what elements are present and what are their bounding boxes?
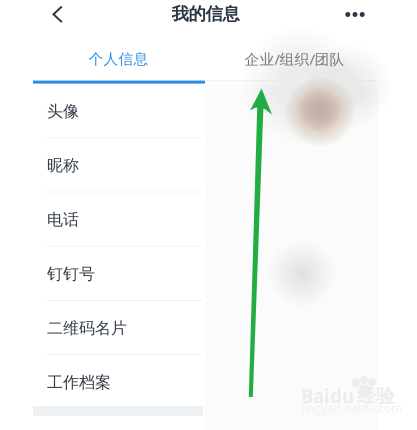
staticText: 昵称 (47, 156, 79, 175)
button[interactable]: More options (338, 0, 372, 32)
staticText: 我的信息 (171, 3, 239, 25)
staticText: jingyan.baidu.com (301, 400, 402, 416)
staticText: 二维码名片 (47, 318, 127, 338)
staticText: 电话 (47, 210, 79, 230)
button[interactable]: 个人信息 (32, 37, 205, 81)
staticText: 个人信息 (88, 50, 148, 68)
button[interactable]: 工作档案 (32, 355, 205, 409)
staticText: 经验 (357, 384, 395, 407)
button[interactable]: 二维码名片 (32, 301, 205, 355)
staticText: 企业/组织/团队 (244, 49, 344, 69)
button[interactable]: 企业/组织/团队 (205, 37, 384, 81)
button[interactable]: 头像 (32, 84, 205, 138)
staticText: 头像 (47, 101, 79, 121)
button[interactable]: Back (41, 0, 75, 32)
button[interactable]: 昵称 (32, 138, 205, 193)
button[interactable]: 钉钉号 (32, 247, 205, 301)
staticText: 钉钉号 (47, 264, 95, 284)
staticText: 工作档案 (47, 372, 111, 392)
button[interactable]: 电话 (32, 193, 205, 247)
staticText: Baidu (301, 384, 354, 408)
